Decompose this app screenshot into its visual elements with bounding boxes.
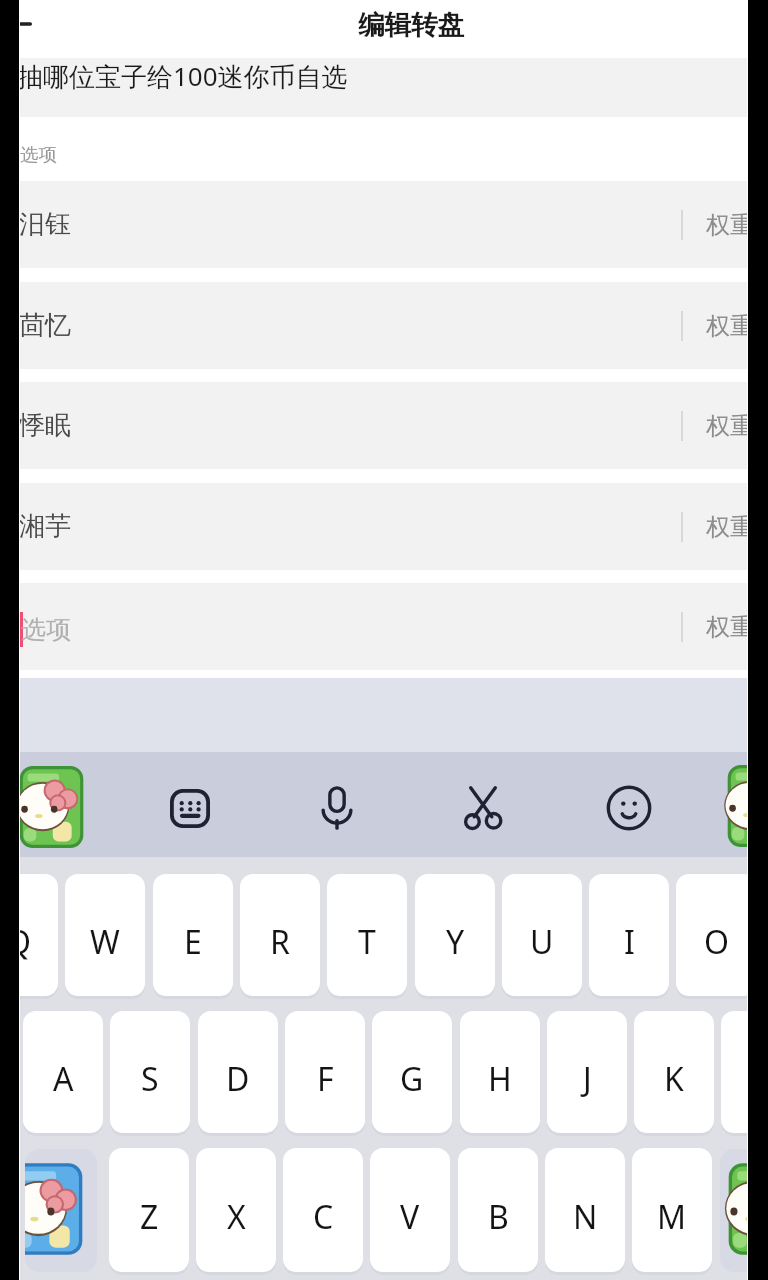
button[interactable]: X [196, 1148, 276, 1272]
button[interactable]: R [240, 874, 320, 996]
staticText: 权重 [706, 612, 754, 642]
button[interactable]: H [460, 1011, 540, 1133]
button[interactable]: I [589, 874, 669, 996]
staticText: Y [446, 920, 465, 964]
button[interactable]: 茴忆 [0, 282, 768, 369]
staticText: 添加选项 [0, 143, 57, 166]
staticText: W [90, 920, 120, 964]
staticText: J [583, 1057, 592, 1101]
button[interactable]: F [285, 1011, 365, 1133]
staticText: N [573, 1195, 598, 1239]
staticText: D [226, 1057, 250, 1101]
button[interactable]: B [458, 1148, 538, 1272]
staticText: S [141, 1057, 159, 1101]
staticText: 茴忆 [19, 309, 71, 342]
button[interactable]: M [632, 1148, 712, 1272]
staticText: R [270, 920, 290, 964]
button[interactable]: 选项 [0, 583, 768, 670]
button[interactable]: T [327, 874, 407, 996]
staticText: X [227, 1195, 246, 1239]
staticText: V [400, 1195, 420, 1239]
button[interactable]: Y [415, 874, 495, 996]
button[interactable]: Sticker [728, 765, 768, 847]
staticText: F [317, 1057, 334, 1101]
staticText: 湘芋 [19, 510, 71, 543]
button[interactable]: Emoji [597, 776, 661, 840]
button[interactable]: C [283, 1148, 363, 1272]
staticText: Z [140, 1195, 159, 1239]
staticText: H [488, 1057, 512, 1101]
button[interactable]: V [370, 1148, 450, 1272]
staticText: T [358, 920, 376, 964]
staticText: K [664, 1057, 684, 1101]
button[interactable]: K [634, 1011, 714, 1133]
staticText: G [400, 1057, 424, 1101]
button[interactable]: Keyboard [158, 776, 222, 840]
staticText: C [313, 1195, 334, 1239]
button[interactable]: U [502, 874, 582, 996]
staticText: 权重 [706, 311, 754, 341]
button[interactable]: E [153, 874, 233, 996]
staticText: 权重 [706, 210, 754, 240]
staticText: Q [6, 920, 31, 964]
button[interactable]: Voice input [305, 776, 369, 840]
button[interactable]: Cut [451, 776, 515, 840]
button[interactable]: 湘芋 [0, 483, 768, 570]
button[interactable]: 汨钰 [0, 181, 768, 268]
button[interactable]: L [721, 1011, 768, 1133]
button[interactable]: J [547, 1011, 627, 1133]
staticText: I [624, 920, 635, 964]
staticText: 悸眠 [19, 409, 71, 442]
staticText: A [53, 1057, 74, 1101]
staticText: 权重 [706, 512, 754, 542]
staticText: 选项 [21, 614, 71, 645]
button[interactable]: A [23, 1011, 103, 1133]
button[interactable]: Q [0, 874, 58, 996]
button[interactable]: W [65, 874, 145, 996]
button[interactable]: Back [0, 2, 38, 46]
button[interactable]: 悸眠 [0, 382, 768, 469]
button[interactable]: D [198, 1011, 278, 1133]
staticText: 汨钰 [19, 208, 71, 241]
button[interactable]: Delete [720, 1149, 768, 1272]
button[interactable]: Sticker [20, 766, 83, 848]
button[interactable]: N [545, 1148, 625, 1272]
button[interactable]: S [110, 1011, 190, 1133]
staticText: U [530, 920, 554, 964]
button[interactable]: G [372, 1011, 452, 1133]
staticText: B [488, 1195, 509, 1239]
staticText: 抽哪位宝子给100迷你币自选 [17, 58, 348, 94]
staticText: O [704, 920, 729, 964]
button[interactable]: Z [109, 1148, 189, 1272]
staticText: E [184, 920, 202, 964]
button[interactable]: O [676, 874, 756, 996]
staticText: M [657, 1195, 687, 1239]
staticText: 编辑转盘 [358, 8, 464, 41]
staticText: 权重 [706, 411, 754, 441]
button[interactable]: Shift [25, 1149, 97, 1272]
